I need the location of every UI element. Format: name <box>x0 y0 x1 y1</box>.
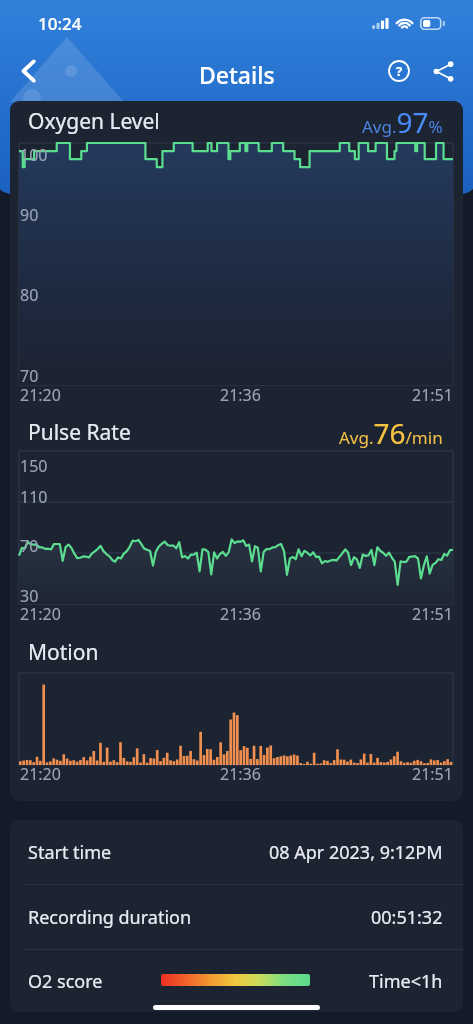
staticText: 21:36 <box>220 603 261 625</box>
staticText: 21:20 <box>20 763 61 785</box>
staticText: Pulse Rate <box>28 418 131 447</box>
staticText: 80 <box>20 284 39 306</box>
staticText: 00:51:32 <box>371 905 443 930</box>
staticText: Oxygen Level <box>28 107 160 136</box>
staticText: O2 score <box>28 969 103 994</box>
staticText: 90 <box>20 204 39 226</box>
staticText: 21:20 <box>20 603 61 625</box>
staticText: Avg.97% <box>362 103 443 139</box>
staticText: 21:36 <box>220 763 261 785</box>
staticText: ? <box>396 62 403 80</box>
staticText: 08 Apr 2023, 9:12PM <box>269 840 443 865</box>
button[interactable]: O2 score <box>10 950 463 1012</box>
staticText: 21:51 <box>412 384 453 406</box>
staticText: 100 <box>20 144 48 166</box>
staticText: 70 <box>20 535 39 557</box>
staticText: Motion <box>28 638 99 667</box>
staticText: Avg.76/min <box>339 414 443 450</box>
staticText: 21:51 <box>412 603 453 625</box>
staticText: 21:20 <box>20 384 61 406</box>
staticText: 21:36 <box>220 384 261 406</box>
staticText: Start time <box>28 840 112 865</box>
staticText: 30 <box>20 585 39 607</box>
button[interactable]: Help <box>377 49 421 93</box>
staticText: Time<1h <box>369 969 443 994</box>
staticText: 110 <box>20 486 48 508</box>
button[interactable]: Start time <box>10 820 463 884</box>
button[interactable]: Share <box>421 49 465 93</box>
staticText: 70 <box>20 365 39 387</box>
staticText: Details <box>199 59 275 90</box>
button[interactable]: Recording duration <box>10 885 463 949</box>
button[interactable]: Back <box>6 48 52 94</box>
staticText: 21:51 <box>412 763 453 785</box>
staticText: 10:24 <box>38 12 82 35</box>
staticText: 150 <box>20 455 48 477</box>
staticText: Recording duration <box>28 905 192 930</box>
